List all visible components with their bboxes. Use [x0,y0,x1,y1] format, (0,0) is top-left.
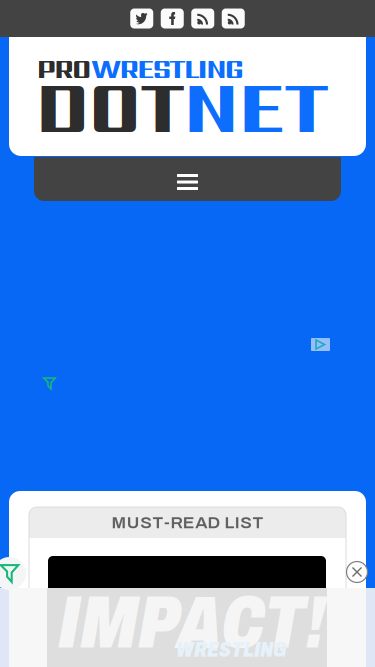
staticText: WRESTLING [176,638,287,661]
button[interactable]: Menu [34,157,341,201]
staticText: PRO [37,50,91,87]
button[interactable]: RSS comments [222,8,245,28]
staticText: IMPACT! [58,583,326,663]
button[interactable]: Twitter [130,8,153,28]
button[interactable]: Close ad [345,560,369,584]
staticText: MUST-READ LIST [111,513,264,532]
staticText: DOT [36,55,184,158]
button[interactable]: RSS feed [191,8,214,28]
button[interactable]: Facebook [161,8,184,28]
staticText: WRESTLING [91,50,244,87]
staticText: NET [184,55,328,158]
